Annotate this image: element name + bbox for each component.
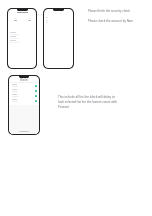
staticText: This include all list the block will del… [58, 95, 118, 109]
button[interactable]: Option [13, 18, 17, 21]
button[interactable]: List item [9, 83, 39, 88]
button[interactable]: List item [9, 93, 39, 98]
staticText: Please finish the security check [88, 9, 131, 13]
button[interactable]: Option [27, 18, 31, 21]
button[interactable]: List item [9, 88, 39, 93]
staticText: Please check the account by Nam [88, 19, 134, 23]
staticText: Wallet [20, 78, 29, 82]
button[interactable]: List item [9, 98, 39, 103]
